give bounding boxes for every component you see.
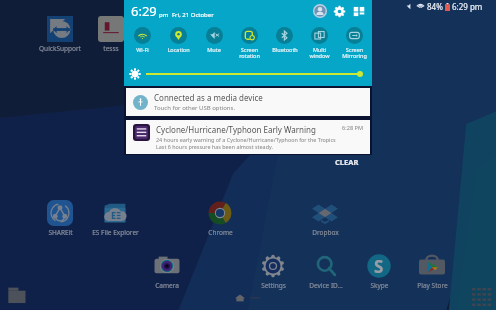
staticText: tesss <box>103 44 119 53</box>
button[interactable]: Brightness <box>146 70 363 78</box>
staticText: Bluetooth <box>272 46 298 53</box>
button[interactable]: Camera <box>141 253 193 290</box>
button[interactable]: Location <box>160 22 196 62</box>
button[interactable]: Recents <box>249 292 261 304</box>
button[interactable]: Chrome <box>194 200 246 237</box>
button[interactable]: CLEAR <box>333 157 361 167</box>
staticText: 84% <box>427 1 443 12</box>
staticText: pm <box>159 11 169 19</box>
staticText: Settings <box>261 281 286 290</box>
button[interactable]: QuickSupport <box>34 16 86 53</box>
button[interactable]: User profile <box>313 4 327 18</box>
staticText: Mute <box>207 46 221 53</box>
staticText: 24 hours early warning of a Cyclone/Hurr… <box>156 136 336 143</box>
staticText: QuickSupport <box>39 44 81 53</box>
staticText: Touch for other USB options. <box>154 104 236 112</box>
staticText: ES File Explorer <box>92 228 139 237</box>
button[interactable]: Wi-Fi <box>124 22 160 62</box>
button[interactable]: Screen Mirroring <box>337 22 372 62</box>
button[interactable]: Connected as a media device <box>126 88 370 116</box>
staticText: 6:28 PM <box>342 124 364 132</box>
button[interactable]: S <box>353 253 405 290</box>
staticText: Cyclone/Hurricane/Typhoon Early Warning <box>156 124 316 135</box>
button[interactable]: Play Store <box>406 253 458 290</box>
button[interactable]: Screen rotation <box>232 22 267 62</box>
button[interactable]: Folder <box>7 285 29 307</box>
button[interactable]: Cyclone/Hurricane/Typhoon Early Warning <box>126 120 370 154</box>
button[interactable]: ES File Explorer <box>89 200 141 237</box>
button[interactable]: SHAREit <box>34 200 86 237</box>
button[interactable]: Edit quick settings <box>353 5 365 17</box>
button[interactable]: Apps <box>472 288 492 308</box>
button[interactable]: Dropbox <box>299 200 351 237</box>
staticText: Chrome <box>208 228 233 237</box>
staticText: CLEAR <box>335 157 359 167</box>
staticText: Camera <box>155 281 179 290</box>
staticText: Screen rotation <box>239 46 260 60</box>
staticText: SHAREit <box>48 228 73 237</box>
staticText: 6:29 pm <box>452 1 483 12</box>
button[interactable]: Mute <box>196 22 232 62</box>
button[interactable]: Bluetooth <box>267 22 302 62</box>
staticText: Device ID... <box>309 281 343 290</box>
staticText: Last 6 hours pressure has been almost st… <box>156 143 273 150</box>
staticText: S <box>374 255 384 278</box>
staticText: Screen Mirroring <box>342 46 367 60</box>
button[interactable]: Home <box>234 292 246 304</box>
staticText: Fri, 21 October <box>172 11 214 19</box>
button[interactable]: Settings <box>333 5 346 18</box>
button[interactable]: tesss <box>85 16 137 53</box>
button[interactable]: Multi window <box>302 22 337 62</box>
staticText: Skype <box>370 281 389 290</box>
staticText: Location <box>167 46 190 53</box>
staticText: Connected as a media device <box>154 92 263 103</box>
button[interactable]: Settings <box>247 253 299 290</box>
staticText: Wi-Fi <box>136 46 149 53</box>
staticText: Multi window <box>309 46 330 60</box>
staticText: 6:29 <box>131 2 157 20</box>
staticText: Dropbox <box>312 228 339 237</box>
staticText: Play Store <box>417 281 448 290</box>
button[interactable]: Device ID... <box>300 253 352 290</box>
